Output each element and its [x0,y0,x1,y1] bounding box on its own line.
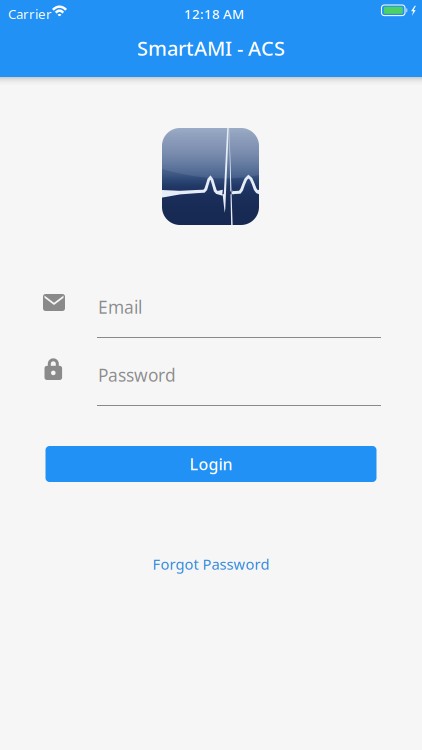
staticText: Email [98,295,142,318]
staticText: Forgot Password [152,554,269,574]
staticText: Password [98,363,176,386]
staticText: 12:18 AM [184,5,244,23]
staticText: SmartAMI - ACS [137,35,285,61]
staticText: Carrier [8,5,52,23]
button[interactable]: Forgot Password [121,553,301,575]
button[interactable]: Login [45,446,376,482]
staticText: Login [189,453,232,475]
